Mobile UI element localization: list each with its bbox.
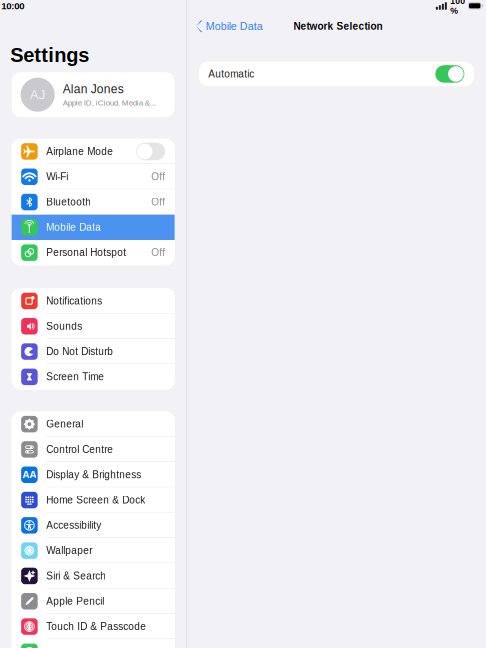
button[interactable]: Mobile Data [12, 215, 175, 240]
staticText: Home Screen & Dock [46, 494, 145, 506]
staticText: Display & Brightness [46, 469, 141, 480]
button[interactable]: Screen Time [12, 364, 175, 389]
staticText: Wi-Fi [46, 171, 68, 182]
staticText: Off [151, 247, 165, 258]
staticText: Off [151, 196, 165, 208]
staticText: Notifications [46, 295, 102, 307]
button[interactable]: Emergency SOS [12, 639, 175, 648]
staticText: Mobile Data [46, 222, 101, 233]
staticText: Personal Hotspot [46, 247, 126, 258]
staticText: Sounds [46, 321, 82, 332]
staticText: Apple Pencil [46, 596, 104, 607]
staticText: Wallpaper [46, 545, 92, 556]
staticText: Airplane Mode [46, 146, 113, 157]
staticText: Off [151, 171, 165, 182]
button[interactable]: Touch ID & Passcode [12, 614, 175, 639]
staticText: Alan Jones [63, 82, 124, 96]
button[interactable]: Sounds [12, 314, 175, 339]
button[interactable]: Control Centre [12, 437, 175, 462]
button[interactable]: General [12, 411, 175, 437]
button[interactable]: Airplane Mode [12, 139, 175, 164]
staticText: Accessibility [46, 520, 101, 531]
staticText: Do Not Disturb [46, 346, 113, 357]
button[interactable]: Do Not Disturb [12, 339, 175, 364]
button[interactable]: AA [12, 462, 175, 487]
button[interactable]: Apple Pencil [12, 589, 175, 614]
staticText: Screen Time [46, 371, 104, 382]
button[interactable]: Mobile Data [195, 16, 267, 36]
staticText: Settings [10, 44, 89, 66]
button[interactable]: Home Screen & Dock [12, 487, 175, 513]
staticText: General [46, 419, 83, 430]
staticText: AA [22, 469, 36, 480]
button[interactable]: Wi-Fi [12, 164, 175, 189]
button[interactable]: Automatic [199, 62, 474, 86]
staticText: 100% [450, 0, 465, 15]
staticText: Apple ID, iCloud, Media &... [63, 98, 156, 107]
staticText: Network Selection [294, 21, 383, 32]
button[interactable]: Accessibility [12, 513, 175, 538]
button[interactable]: Wallpaper [12, 538, 175, 563]
staticText: Mobile Data [206, 20, 263, 32]
staticText: Bluetooth [46, 196, 91, 208]
staticText: Touch ID & Passcode [46, 621, 146, 632]
button[interactable]: Notifications [12, 288, 175, 314]
staticText: AJ [30, 87, 46, 102]
staticText: Siri & Search [46, 570, 106, 582]
staticText: 10:00 [1, 0, 24, 11]
staticText: Automatic [208, 68, 254, 80]
staticText: Control Centre [46, 444, 113, 455]
button[interactable]: Bluetooth [12, 189, 175, 215]
button[interactable]: AJ [12, 72, 175, 117]
button[interactable]: Personal Hotspot [12, 240, 175, 265]
button[interactable]: Siri & Search [12, 563, 175, 589]
